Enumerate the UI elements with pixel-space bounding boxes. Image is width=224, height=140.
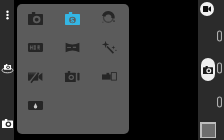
button[interactable]: Sphere xyxy=(54,4,91,33)
button[interactable]: Pano xyxy=(54,33,91,62)
button[interactable]: Record video xyxy=(200,2,214,16)
button[interactable]: Drawer handle xyxy=(216,96,223,108)
button[interactable]: Frame xyxy=(91,62,128,91)
button[interactable]: Wand xyxy=(91,33,128,62)
button[interactable]: Drawer handle xyxy=(216,62,223,74)
button[interactable]: Take photo xyxy=(201,58,215,81)
button[interactable]: More options xyxy=(0,4,14,26)
button[interactable]: SlowMo xyxy=(17,62,54,91)
button[interactable]: Burst xyxy=(54,62,91,91)
button[interactable]: Camera xyxy=(17,4,54,33)
button[interactable]: LensBlur xyxy=(91,4,128,33)
button[interactable]: Camera mode xyxy=(0,116,14,130)
button[interactable]: Flash xyxy=(17,91,54,120)
button[interactable]: Open gallery xyxy=(200,122,216,138)
button[interactable]: Photo sphere xyxy=(0,61,14,75)
button[interactable]: Drawer handle xyxy=(216,30,223,42)
button[interactable]: Hdr xyxy=(17,33,54,62)
